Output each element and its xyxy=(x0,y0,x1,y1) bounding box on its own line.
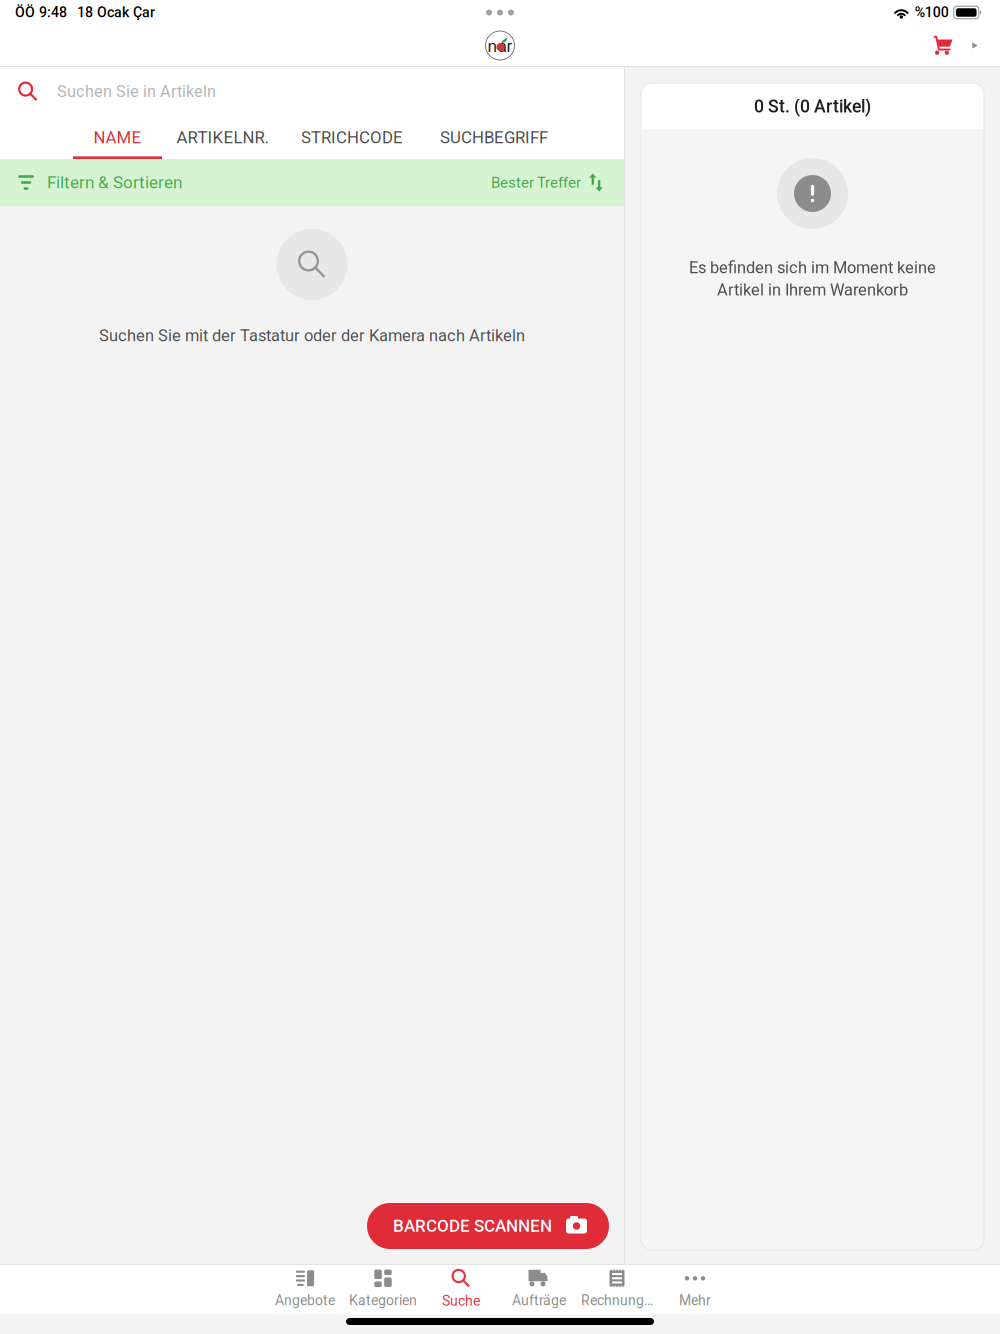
button[interactable]: Kategorien xyxy=(344,1265,422,1314)
button[interactable]: Filtern & Sortieren xyxy=(0,159,624,206)
button[interactable]: Rechnung… xyxy=(578,1265,656,1314)
staticText: Suche xyxy=(442,1293,480,1309)
staticText: Mehr xyxy=(679,1292,711,1309)
staticText: Kategorien xyxy=(349,1292,417,1309)
staticText: Suchen Sie in Artikeln xyxy=(57,82,216,101)
staticText: %100 xyxy=(915,4,949,21)
button[interactable]: Seitenleiste einblenden xyxy=(966,36,984,54)
staticText: SUCHBEGRIFF xyxy=(440,128,548,147)
staticText: ÖÖ 9:48 xyxy=(15,4,67,21)
button[interactable]: NAME xyxy=(73,116,162,159)
staticText: 0 St. (0 Artikel) xyxy=(754,96,871,117)
staticText: Es befinden sich im Moment keine xyxy=(689,258,936,277)
staticText: 18 Ocak Çar xyxy=(77,4,155,21)
button[interactable]: Suche xyxy=(422,1265,500,1314)
staticText: STRICHCODE xyxy=(301,128,403,147)
staticText: nar xyxy=(487,36,512,56)
button[interactable]: Mehr xyxy=(656,1265,734,1314)
button[interactable]: Angebote xyxy=(266,1265,344,1314)
staticText: Artikel in Ihrem Warenkorb xyxy=(717,280,908,299)
button[interactable]: Warenkorb xyxy=(930,32,956,58)
staticText: Aufträge xyxy=(512,1292,566,1309)
button[interactable]: Suchen Sie in Artikeln xyxy=(0,67,624,116)
button[interactable]: ARTIKELNR. xyxy=(178,116,267,159)
button[interactable]: SUCHBEGRIFF xyxy=(435,116,553,159)
staticText: ARTIKELNR. xyxy=(176,128,268,147)
staticText: Filtern & Sortieren xyxy=(47,172,182,192)
staticText: Suchen Sie mit der Tastatur oder der Kam… xyxy=(99,326,525,345)
button[interactable]: Aufträge xyxy=(500,1265,578,1314)
button[interactable]: STRICHCODE xyxy=(301,116,403,159)
staticText: BARCODE SCANNEN xyxy=(393,1216,552,1236)
staticText: Angebote xyxy=(275,1292,335,1309)
staticText: NAME xyxy=(93,128,141,147)
staticText: Bester Treffer xyxy=(491,174,581,191)
staticText: Rechnung… xyxy=(581,1292,653,1309)
button[interactable]: BARCODE SCANNEN xyxy=(367,1203,609,1249)
